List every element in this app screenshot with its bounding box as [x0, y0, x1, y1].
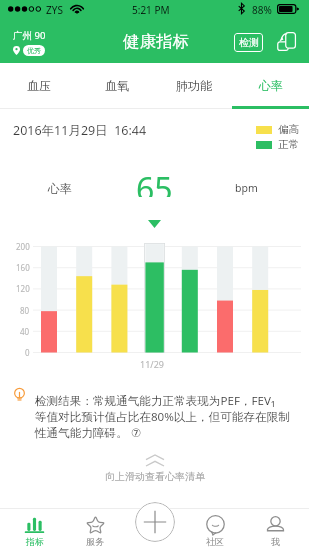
staticText: 心率: [259, 78, 283, 93]
staticText: 偏高: [278, 123, 299, 136]
staticText: 11/29: [140, 358, 164, 370]
button[interactable]: Share: [277, 32, 296, 51]
button[interactable]: 社区: [185, 509, 245, 550]
staticText: ZYS: [46, 3, 63, 17]
button[interactable]: 检测: [234, 33, 263, 52]
staticText: bpm: [235, 181, 258, 195]
staticText: 血氧: [105, 78, 129, 93]
button[interactable]: 血压: [0, 63, 78, 109]
staticText: 5:21 PM: [132, 3, 170, 17]
staticText: 200: [16, 241, 30, 252]
staticText: 指标: [26, 536, 44, 547]
staticText: 广州 90: [13, 29, 46, 42]
staticText: 检测: [239, 36, 259, 49]
staticText: 88%: [252, 3, 272, 17]
button[interactable]: 服务: [65, 509, 125, 550]
button[interactable]: 肺功能: [155, 63, 232, 109]
button[interactable]: 血氧: [78, 63, 155, 109]
staticText: 80: [20, 305, 30, 316]
button[interactable]: 指标: [4, 509, 65, 550]
staticText: 健康指标: [123, 31, 189, 52]
staticText: 正常: [278, 138, 299, 151]
staticText: 心率: [48, 181, 72, 196]
staticText: 0: [25, 347, 30, 358]
staticText: 160: [16, 262, 30, 273]
staticText: 2016年11月29日 16:44: [13, 122, 147, 139]
staticText: 社区: [206, 536, 224, 547]
staticText: 40: [20, 326, 30, 337]
staticText: 肺功能: [176, 78, 212, 93]
staticText: 65: [136, 167, 173, 197]
button[interactable]: 我: [245, 509, 305, 550]
button[interactable]: 心率: [232, 63, 309, 109]
staticText: 检测结果：常规通气能力正常表现为PEF，FEV₁ 等值对比预计值占比在80%以上…: [35, 393, 290, 441]
staticText: 向上滑动查看心率清单: [105, 470, 205, 483]
staticText: 服务: [86, 536, 104, 547]
button[interactable]: Add: [135, 502, 175, 542]
staticText: 我: [271, 536, 280, 547]
staticText: 120: [16, 283, 30, 294]
staticText: 血压: [27, 78, 51, 93]
staticText: 优秀: [27, 46, 41, 55]
